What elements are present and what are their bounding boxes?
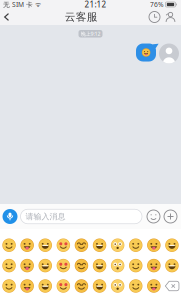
button[interactable]: Emoji keyboard xyxy=(142,210,164,223)
button[interactable]: Emoji xyxy=(72,235,90,255)
button[interactable]: Emoji xyxy=(72,255,90,276)
button[interactable]: Emoji xyxy=(163,235,181,255)
button[interactable]: Emoji xyxy=(90,276,109,296)
button[interactable]: Emoji xyxy=(145,255,163,276)
button[interactable]: Emoji xyxy=(54,276,72,296)
staticText: 云客服 xyxy=(65,10,98,23)
button[interactable]: Voice message xyxy=(0,209,20,224)
button[interactable]: More options xyxy=(164,210,181,223)
button[interactable]: Emoji xyxy=(109,276,127,296)
button[interactable]: Emoji xyxy=(90,255,109,276)
button[interactable]: Emoji xyxy=(18,255,36,276)
button[interactable]: Emoji xyxy=(18,235,36,255)
button[interactable]: Emoji xyxy=(127,276,145,296)
button[interactable]: Emoji xyxy=(163,255,181,276)
button[interactable]: Emoji xyxy=(36,276,54,296)
button[interactable]: Emoji xyxy=(36,255,54,276)
button[interactable]: 请输入消息 xyxy=(20,209,142,224)
staticText: 21:12 xyxy=(84,0,106,10)
button[interactable]: History xyxy=(147,11,162,22)
button[interactable]: Emoji xyxy=(18,276,36,296)
button[interactable]: Emoji xyxy=(36,235,54,255)
button[interactable]: Emoji xyxy=(127,235,145,255)
staticText: ᯤ xyxy=(33,0,41,9)
staticText: 76% xyxy=(150,0,164,9)
button[interactable]: Emoji xyxy=(0,255,18,276)
button[interactable]: Emoji xyxy=(90,235,109,255)
button[interactable]: Emoji xyxy=(54,235,72,255)
button[interactable]: Emoji xyxy=(145,276,163,296)
button[interactable]: Emoji xyxy=(72,276,90,296)
staticText: 无 SIM 卡 xyxy=(3,0,33,9)
button[interactable]: Emoji xyxy=(0,276,18,296)
button[interactable]: Emoji xyxy=(109,255,127,276)
staticText: 晚上9:12 xyxy=(80,30,100,37)
button[interactable]: Emoji xyxy=(145,235,163,255)
button[interactable]: Delete xyxy=(163,276,181,296)
button[interactable]: Emoji xyxy=(54,255,72,276)
button[interactable]: Emoji xyxy=(109,235,127,255)
button[interactable]: Emoji xyxy=(127,255,145,276)
button[interactable]: Emoji xyxy=(0,235,18,255)
button[interactable]: Back xyxy=(0,9,15,25)
staticText: 请输入消息 xyxy=(25,212,65,221)
button[interactable]: Customer service agent xyxy=(162,11,178,22)
